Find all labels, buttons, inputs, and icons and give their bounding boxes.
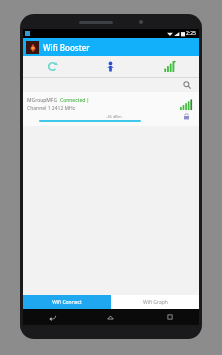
button[interactable]: Connected users (81, 56, 140, 77)
staticText: Wifi Graph (143, 299, 168, 306)
button[interactable]: Wifi Connect (23, 295, 111, 309)
staticText: Wifi Booster (43, 42, 90, 53)
button[interactable]: MGroupMFG (23, 92, 199, 126)
button[interactable]: Home (81, 309, 140, 325)
button[interactable]: Refresh (23, 56, 81, 77)
staticText: Wifi Connect (52, 299, 82, 306)
staticText: -36 dBm (106, 114, 122, 119)
button[interactable]: Wifi Graph (111, 295, 199, 309)
button[interactable]: Search (181, 79, 193, 91)
staticText: Connected | (60, 97, 90, 104)
button[interactable]: Signal boost (140, 56, 199, 77)
staticText: MGroupMFG (27, 97, 58, 104)
button[interactable]: Recent apps (140, 309, 199, 325)
staticText: Channel 1 2412 MHz (27, 105, 76, 112)
staticText: 2:25 (186, 30, 196, 37)
button[interactable]: Back (23, 309, 81, 325)
